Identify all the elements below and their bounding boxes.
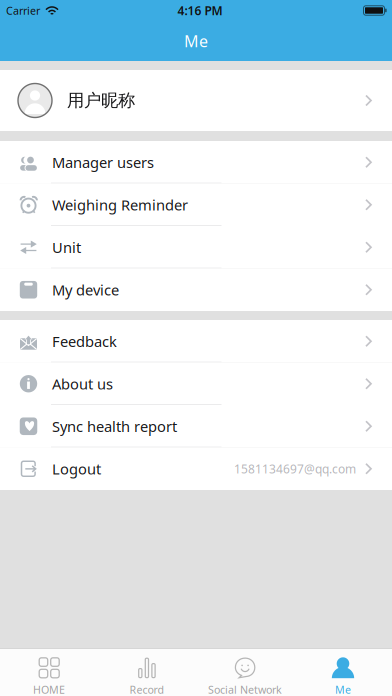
staticText: Me [184, 30, 208, 52]
staticText: Carrier [6, 3, 40, 18]
button[interactable]: Logout [0, 447, 392, 490]
button[interactable]: About us [0, 362, 392, 405]
staticText: Record [129, 682, 164, 696]
button[interactable]: Feedback [0, 320, 392, 362]
button[interactable]: My device [0, 268, 392, 311]
staticText: HOME [33, 682, 65, 696]
staticText: Me [335, 682, 351, 696]
staticText: 1581134697@qq.com [234, 461, 356, 477]
button[interactable]: Me [294, 649, 392, 696]
button[interactable]: Unit [0, 226, 392, 268]
staticText: Sync health report [52, 416, 177, 436]
staticText: Unit [52, 237, 81, 257]
staticText: Weighing Reminder [52, 195, 188, 214]
button[interactable]: 用户昵称 [0, 70, 392, 131]
button[interactable]: Weighing Reminder [0, 183, 392, 226]
button[interactable]: Sync health report [0, 405, 392, 447]
button[interactable]: HOME [0, 649, 98, 696]
staticText: My device [52, 280, 119, 299]
button[interactable]: Record [98, 649, 196, 696]
staticText: Social Network [208, 682, 282, 696]
staticText: 用户昵称 [67, 90, 135, 111]
button[interactable]: Social Network [196, 649, 294, 696]
staticText: 4:16 PM [177, 2, 222, 18]
staticText: Logout [52, 459, 101, 478]
staticText: Feedback [52, 331, 117, 351]
button[interactable]: Manager users [0, 141, 392, 183]
staticText: Manager users [52, 152, 154, 172]
staticText: About us [52, 374, 113, 393]
